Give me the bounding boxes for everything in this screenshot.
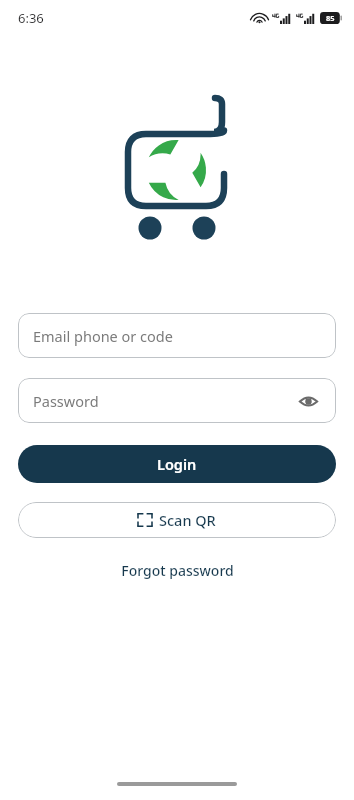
button[interactable]: Email phone or code (18, 313, 336, 358)
staticText: 85 (326, 13, 335, 23)
button[interactable]: Show password (295, 388, 321, 414)
button[interactable]: Scan QR (18, 502, 336, 538)
staticText: Forgot password (121, 561, 234, 580)
button[interactable]: Forgot password (0, 557, 354, 584)
staticText: Login (157, 454, 197, 474)
button[interactable]: Password (18, 378, 336, 423)
staticText: 6:36 (18, 9, 44, 27)
staticText: Scan QR (159, 510, 216, 530)
staticText: Password (33, 391, 99, 411)
button[interactable]: Login (18, 445, 336, 483)
staticText: Email phone or code (33, 326, 173, 346)
